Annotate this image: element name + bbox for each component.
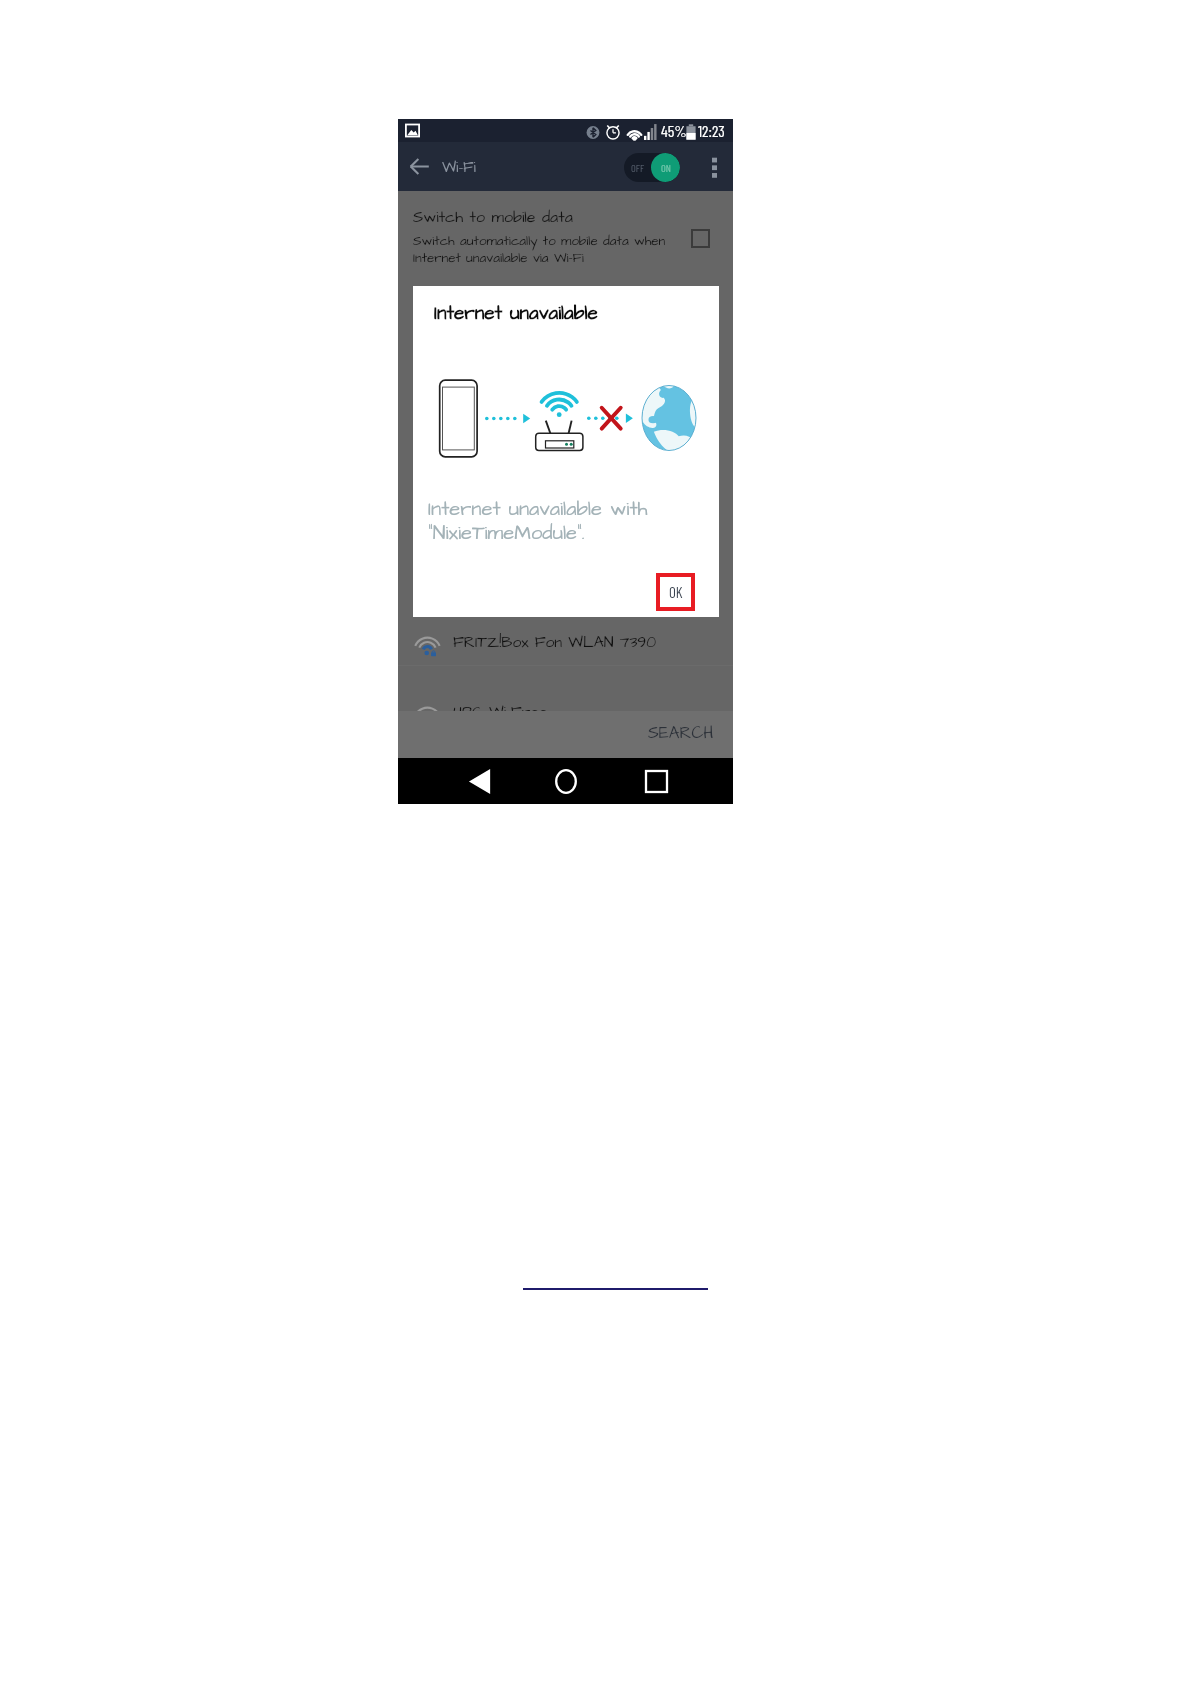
staticText: OFF (631, 161, 645, 174)
staticText: OK (669, 583, 683, 601)
staticText: SEARCH (648, 721, 714, 744)
button[interactable]: Recent apps (636, 758, 676, 804)
staticText: 45% (661, 121, 687, 140)
staticText: Internet unavailable with "NixieTimeModu… (428, 495, 648, 547)
button[interactable]: FRITZ!Box Fon WLAN 7390 (398, 619, 733, 667)
staticText: Internet unavailable (434, 300, 598, 326)
staticText: FRITZ!Box Fon WLAN 7390 (453, 632, 657, 654)
staticText: UPC Wi-Free (453, 702, 548, 724)
button[interactable]: OFF (624, 153, 680, 182)
staticText: 12:23 (698, 121, 725, 140)
button[interactable]: Home (546, 758, 586, 804)
button[interactable]: Switch to mobile data (686, 224, 714, 252)
button[interactable]: OK (656, 573, 695, 611)
staticText: ON (661, 161, 671, 174)
button[interactable]: More options (702, 156, 726, 180)
button[interactable]: Back (460, 758, 500, 804)
button[interactable]: UPC Wi-Free (398, 689, 733, 737)
staticText: Wi-Fi (442, 157, 476, 178)
button[interactable]: SEARCH (648, 721, 714, 744)
staticText: Switch to mobile data (413, 206, 573, 228)
button[interactable]: Navigate up (399, 146, 439, 186)
staticText: Switch automatically to mobile data when… (413, 232, 666, 268)
